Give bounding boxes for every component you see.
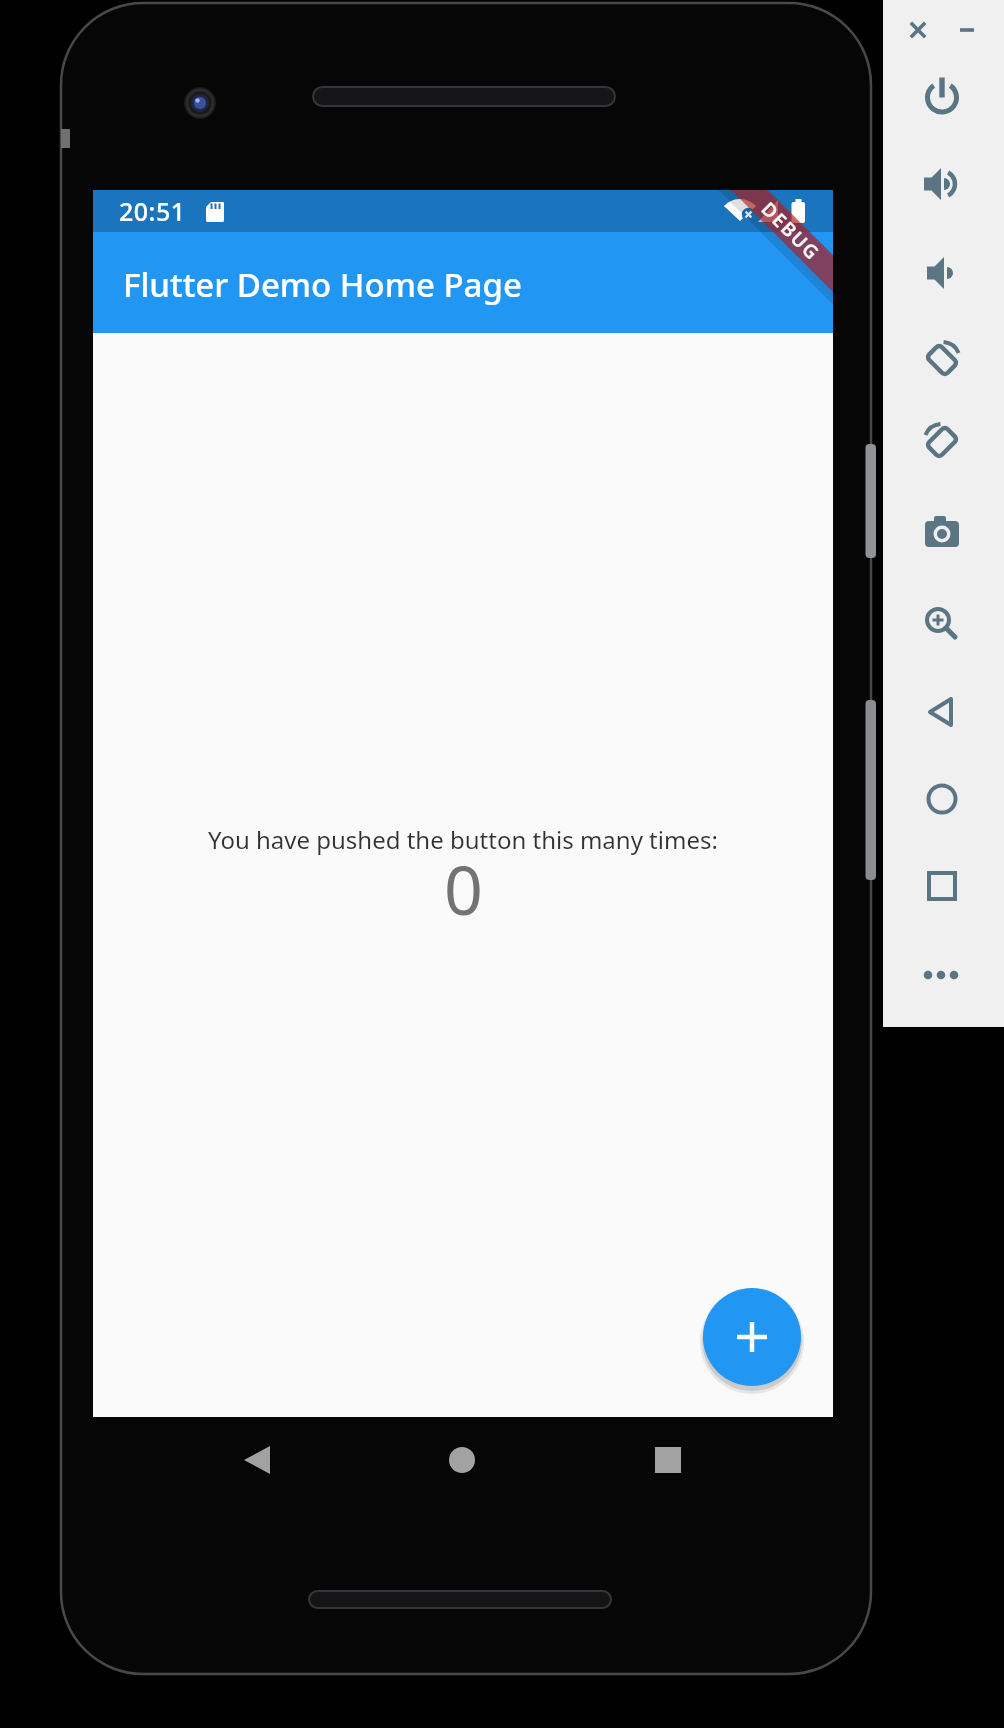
button[interactable]	[920, 74, 964, 118]
button[interactable]	[896, 8, 940, 52]
button[interactable]	[233, 1436, 281, 1484]
button[interactable]	[919, 953, 963, 997]
button[interactable]	[919, 162, 963, 206]
button[interactable]	[919, 601, 963, 645]
button[interactable]	[920, 777, 964, 821]
button[interactable]	[438, 1436, 486, 1484]
button[interactable]	[644, 1436, 692, 1484]
staticText: You have pushed the button this many tim…	[208, 823, 718, 856]
button[interactable]	[920, 864, 964, 908]
staticText: Flutter Demo Home Page	[123, 262, 522, 307]
button[interactable]	[703, 1288, 801, 1386]
button[interactable]	[921, 690, 965, 734]
staticText: 0	[444, 842, 483, 926]
staticText: 20:51	[119, 194, 186, 228]
button[interactable]	[920, 336, 964, 380]
button[interactable]	[945, 8, 989, 52]
button[interactable]	[920, 418, 964, 462]
button[interactable]	[920, 513, 964, 557]
button[interactable]	[919, 251, 963, 295]
